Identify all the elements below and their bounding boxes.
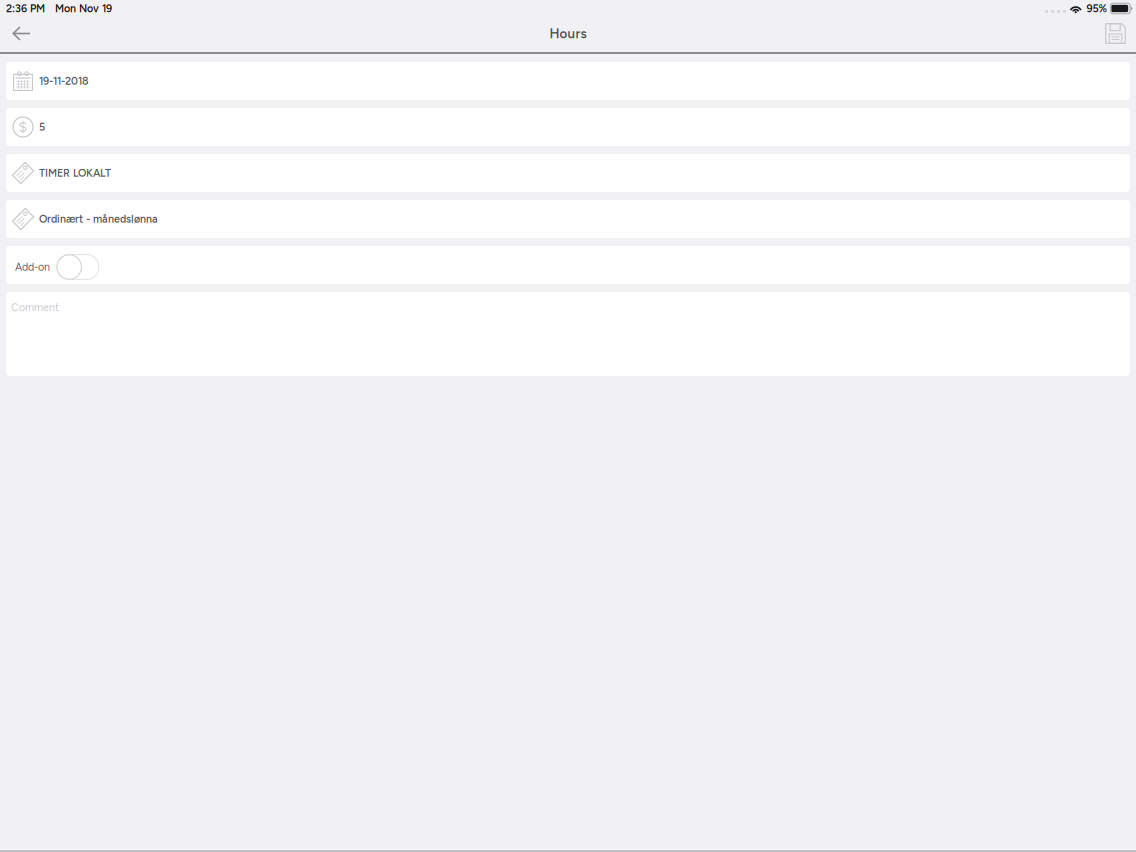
staticText: 2:36 PM (6, 2, 45, 15)
button[interactable]: Add-on (6, 246, 1130, 284)
staticText: ▪ ▪ ▪ ▪ (1045, 8, 1067, 14)
staticText: Comment (11, 301, 59, 314)
staticText: Add-on (15, 261, 50, 273)
staticText: 95% (1087, 2, 1108, 15)
button[interactable]: TIMER LOKALT (6, 154, 1130, 192)
button[interactable]: Save (1080, 17, 1136, 49)
button[interactable]: Ordinært - månedslønna (6, 200, 1130, 238)
staticText: TIMER LOKALT (39, 167, 111, 179)
button[interactable]: 5 (6, 108, 1130, 146)
staticText: Ordinært - månedslønna (39, 213, 158, 225)
staticText: 5 (39, 121, 45, 133)
staticText: Mon Nov 19 (55, 2, 112, 15)
button[interactable]: 19-11-2018 (6, 62, 1130, 100)
staticText: Hours (549, 25, 586, 41)
button[interactable]: Back (0, 17, 56, 49)
staticText: 19-11-2018 (39, 75, 89, 87)
